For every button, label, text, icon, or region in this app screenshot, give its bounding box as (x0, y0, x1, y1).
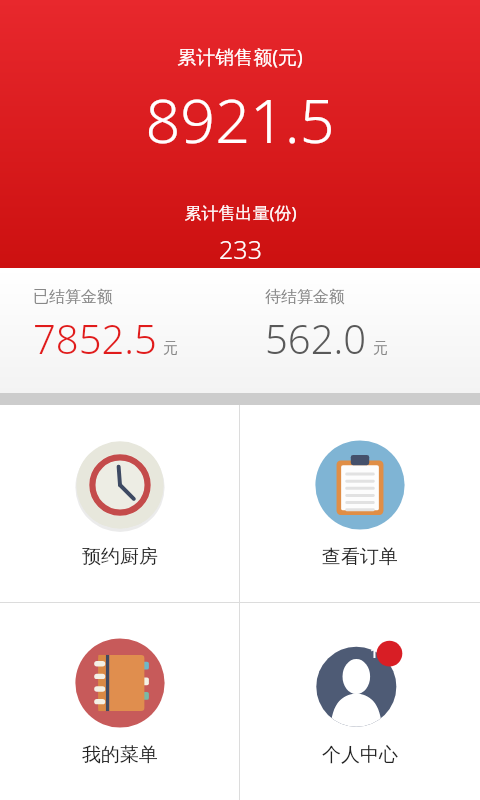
staticText: 元 (373, 339, 388, 358)
staticText: 累计售出量(份) (184, 201, 297, 224)
staticText: 个人中心 (322, 743, 398, 767)
button[interactable]: 个人中心 (240, 603, 480, 800)
other: 预约厨房 (74, 439, 166, 531)
button[interactable]: 查看订单 (240, 405, 480, 602)
other: 我的菜单 (74, 637, 166, 729)
button[interactable]: 我的菜单 (0, 603, 239, 800)
staticText: 我的菜单 (82, 743, 158, 767)
button[interactable]: 预约厨房 (0, 405, 239, 602)
other: 查看订单 (314, 439, 406, 531)
staticText: 元 (163, 339, 178, 358)
staticText: 预约厨房 (82, 545, 158, 569)
staticText: 查看订单 (322, 545, 398, 569)
other: 个人中心 (314, 637, 406, 729)
staticText: 累计销售额(元) (177, 44, 303, 70)
button[interactable]: 已结算金额 (0, 268, 240, 393)
button[interactable]: 待结算金额 (240, 268, 480, 393)
staticText: 233 (219, 232, 262, 266)
staticText: 8921.5 (145, 78, 335, 161)
staticText: 待结算金额 (265, 287, 345, 307)
staticText: 7852.5 (33, 311, 157, 365)
staticText: 已结算金额 (33, 287, 113, 307)
staticText: 562.0 (265, 311, 367, 365)
staticText: 1 (370, 643, 379, 662)
